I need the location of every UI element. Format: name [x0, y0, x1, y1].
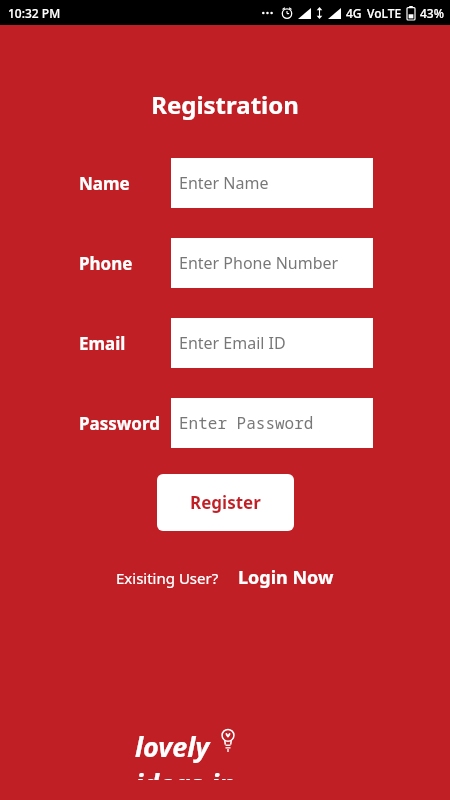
- button[interactable]: Enter Name: [171, 158, 373, 208]
- staticText: Registration: [0, 88, 450, 121]
- button[interactable]: Exisiting User?: [116, 568, 219, 588]
- staticText: VoLTE: [367, 5, 402, 21]
- button[interactable]: Enter Phone Number: [171, 238, 373, 288]
- staticText: Enter Email ID: [179, 332, 286, 354]
- button[interactable]: Login Now: [238, 565, 334, 590]
- staticText: 4G: [346, 5, 362, 21]
- staticText: Enter Password: [179, 412, 314, 434]
- staticText: Password: [79, 412, 160, 435]
- staticText: lovely ideas.in: [135, 728, 315, 780]
- staticText: Enter Name: [179, 172, 269, 194]
- button[interactable]: Register: [157, 474, 294, 531]
- staticText: 43%: [420, 5, 444, 21]
- staticText: Email: [79, 332, 126, 355]
- staticText: Enter Phone Number: [179, 252, 339, 274]
- button[interactable]: Enter Password: [171, 398, 373, 448]
- button[interactable]: Enter Email ID: [171, 318, 373, 368]
- staticText: Register: [190, 491, 261, 514]
- staticText: Name: [79, 172, 130, 195]
- staticText: Phone: [79, 252, 133, 275]
- staticText: 10:32 PM: [8, 5, 61, 21]
